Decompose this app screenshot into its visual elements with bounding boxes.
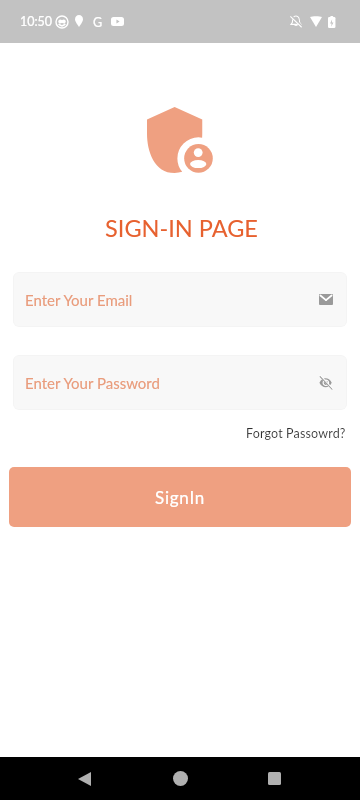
staticText: G xyxy=(93,15,103,30)
button[interactable]: Forgot Passowrd? xyxy=(242,422,350,445)
staticText: SIGN-IN PAGE xyxy=(3,214,360,242)
staticText: SignIn xyxy=(155,487,206,507)
button[interactable]: Back xyxy=(68,762,101,795)
button[interactable]: Show password xyxy=(317,374,335,391)
button[interactable]: Enter Your Email xyxy=(13,272,347,327)
button[interactable]: Enter Your Password xyxy=(13,355,347,410)
button[interactable]: Email xyxy=(317,292,335,307)
button[interactable]: Home xyxy=(164,762,197,795)
button[interactable]: SignIn xyxy=(9,467,351,527)
button[interactable]: Recent apps xyxy=(258,762,291,795)
staticText: 10:50 xyxy=(20,14,53,29)
staticText: Enter Your Email xyxy=(25,291,133,309)
staticText: Enter Your Password xyxy=(25,374,160,392)
